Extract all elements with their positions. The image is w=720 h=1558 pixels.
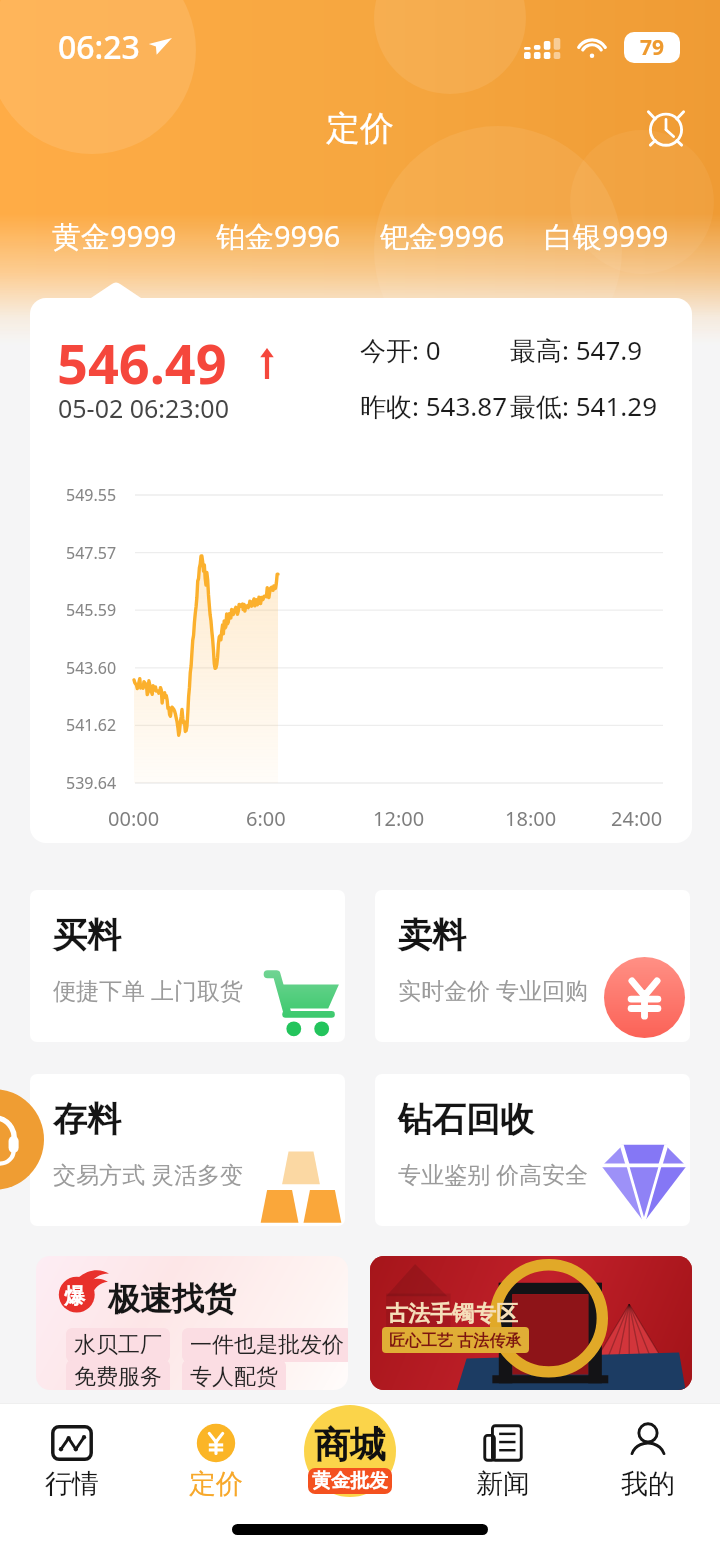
staticText: 549.55 — [66, 484, 117, 506]
button[interactable]: 新闻 — [447, 1403, 559, 1503]
staticText: 专人配货 — [190, 1363, 278, 1390]
button[interactable]: 钻石回收 — [375, 1074, 690, 1226]
button[interactable]: 买料 — [30, 890, 345, 1042]
staticText: 商城 — [314, 1422, 386, 1467]
staticText: 547.57 — [66, 542, 117, 564]
staticText: 24:00 — [611, 805, 663, 832]
staticText: 黄金9999 — [52, 216, 177, 256]
staticText: 爆 — [64, 1283, 85, 1309]
staticText: 古法手镯专区 — [386, 1300, 518, 1328]
staticText: 543.60 — [66, 657, 117, 679]
staticText: 79 — [640, 33, 665, 62]
button[interactable]: 黄金批发 — [308, 1468, 392, 1494]
staticText: 545.59 — [66, 599, 117, 621]
staticText: 6:00 — [246, 805, 286, 832]
staticText: 实时金价 专业回购 — [398, 974, 588, 1005]
staticText: 免费服务 — [74, 1363, 162, 1390]
staticText: 白银9999 — [544, 216, 669, 256]
button[interactable]: 黄金9999 — [52, 206, 177, 266]
staticText: 541.62 — [66, 714, 117, 736]
button[interactable]: 古法手镯专区 — [370, 1256, 692, 1390]
staticText: 新闻 — [476, 1467, 530, 1501]
button[interactable]: 白银9999 — [544, 206, 669, 266]
staticText: 专业鉴别 价高安全 — [398, 1158, 588, 1189]
button[interactable]: 存料 — [30, 1074, 345, 1226]
staticText: 546.49 — [57, 326, 227, 400]
staticText: 钯金9996 — [380, 216, 505, 256]
staticText: 06:23 — [58, 25, 140, 69]
staticText: 钻石回收 — [398, 1098, 534, 1141]
staticText: 539.64 — [66, 772, 117, 794]
staticText: 买料 — [53, 914, 121, 957]
staticText: 行情 — [45, 1467, 99, 1501]
staticText: 18:00 — [505, 805, 557, 832]
staticText: 00:00 — [108, 805, 160, 832]
staticText: 我的 — [621, 1467, 675, 1501]
button[interactable]: 定价 — [160, 1403, 272, 1503]
staticText: 卖料 — [398, 914, 466, 957]
staticText: 定价 — [326, 107, 394, 150]
staticText: 铂金9996 — [216, 216, 341, 256]
staticText: 极速找货 — [108, 1279, 236, 1319]
button[interactable]: 我的 — [592, 1403, 704, 1503]
button[interactable]: Customer service — [0, 1089, 44, 1190]
staticText: 最低: 541.29 — [510, 388, 658, 424]
staticText: 存料 — [53, 1098, 121, 1141]
staticText: 今开: 0 — [360, 332, 441, 368]
staticText: 便捷下单 上门取货 — [53, 974, 243, 1005]
staticText: 一件也是批发价 — [190, 1331, 344, 1359]
staticText: 黄金批发 — [312, 1469, 388, 1493]
staticText: 交易方式 灵活多变 — [53, 1158, 243, 1189]
staticText: 水贝工厂 — [74, 1331, 162, 1359]
staticText: 昨收: 543.87 — [360, 388, 508, 424]
staticText: 最高: 547.9 — [510, 332, 643, 368]
button[interactable]: 商城 — [304, 1405, 396, 1497]
staticText: 定价 — [189, 1467, 243, 1501]
button[interactable]: 铂金9996 — [216, 206, 341, 266]
staticText: 匠心工艺 古法传承 — [389, 1329, 522, 1351]
staticText: 05-02 06:23:00 — [58, 391, 229, 425]
button[interactable]: 行情 — [16, 1403, 128, 1503]
button[interactable]: Alarm — [636, 98, 696, 158]
staticText: 12:00 — [373, 805, 425, 832]
button[interactable]: 爆 — [36, 1256, 348, 1390]
button[interactable]: 钯金9996 — [380, 206, 505, 266]
button[interactable]: 卖料 — [375, 890, 690, 1042]
